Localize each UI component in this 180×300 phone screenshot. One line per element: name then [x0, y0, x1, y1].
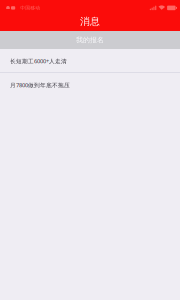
staticText: 月7800做到年底不拖压 [10, 81, 70, 89]
staticText: 我的报名 [76, 36, 104, 44]
staticText: 中国移动 [20, 5, 40, 11]
button[interactable]: 长短期工6000+人走清 [0, 49, 180, 73]
button[interactable]: 月7800做到年底不拖压 [0, 73, 180, 97]
staticText: 消息 [80, 15, 100, 28]
button[interactable]: 我的报名 [0, 31, 180, 49]
staticText: 长短期工6000+人走清 [10, 57, 67, 65]
